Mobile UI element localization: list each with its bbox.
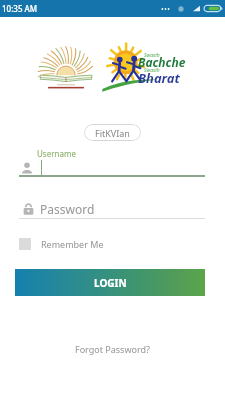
button[interactable]: LOGIN [15, 269, 205, 296]
staticText: LOGIN [94, 276, 127, 290]
staticText: Remember Me [41, 238, 104, 250]
staticText: Bachche [138, 54, 186, 70]
staticText: 10:35 AM [2, 3, 38, 14]
button[interactable]: Forgot Password? [74, 341, 150, 357]
staticText: FitKVIan [95, 127, 130, 139]
staticText: Username [37, 148, 76, 159]
staticText: Bharat [138, 69, 180, 87]
staticText: Swasth [144, 67, 160, 74]
button[interactable]: FitKVIan [84, 124, 141, 141]
staticText: Swasth [144, 52, 160, 59]
staticText: Password [40, 201, 95, 217]
staticText: Forgot Password? [75, 343, 150, 355]
button[interactable]: Remember Me [19, 237, 104, 251]
